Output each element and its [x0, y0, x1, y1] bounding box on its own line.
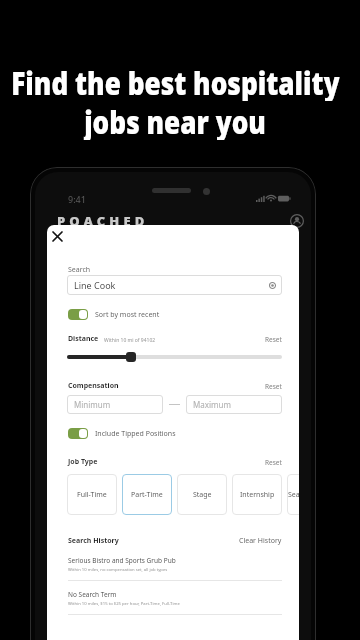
button[interactable]: Minimum	[74, 395, 156, 414]
staticText: Full-Time	[77, 490, 107, 500]
staticText: jobs near you	[84, 101, 266, 140]
button[interactable]: Include Tipped Positions	[68, 427, 176, 440]
button[interactable]: Line Cook	[74, 275, 276, 295]
button[interactable]: Close	[51, 230, 64, 243]
button[interactable]: Stage	[177, 474, 227, 515]
button[interactable]: Reset	[265, 458, 282, 467]
button[interactable]: Profile	[290, 214, 304, 228]
staticText: Include Tipped Positions	[95, 429, 176, 439]
button[interactable]: Full-Time	[67, 474, 117, 515]
staticText: POACHED	[57, 212, 149, 230]
staticText: 9:41	[68, 193, 86, 205]
button[interactable]: No Search Term	[68, 590, 282, 615]
staticText: Within 10 miles, $15 to $25 per hour, Pa…	[68, 601, 180, 607]
button[interactable]: Reset	[265, 335, 282, 344]
staticText: Find the best hospitality	[11, 62, 340, 101]
staticText: Minimum	[74, 399, 111, 410]
staticText: Part-Time	[131, 490, 163, 500]
button[interactable]: Reset	[265, 382, 282, 391]
button[interactable]: Serious Bistro and Sports Grub Pub	[68, 556, 282, 581]
button[interactable]: Clear History	[239, 536, 282, 546]
staticText: Search History	[68, 536, 119, 546]
staticText: Stage	[193, 490, 212, 500]
staticText: Within 10 miles, no compensation set, al…	[68, 567, 168, 573]
staticText: Distance	[68, 334, 99, 344]
button[interactable]: Part-Time	[122, 474, 172, 515]
button[interactable]: Internship	[232, 474, 282, 515]
staticText: Serious Bistro and Sports Grub Pub	[68, 556, 176, 565]
staticText: Internship	[240, 490, 275, 500]
button[interactable]: Seasonal	[287, 474, 299, 515]
staticText: Line Cook	[74, 279, 116, 291]
button[interactable]: Maximum	[193, 395, 275, 414]
staticText: Within 10 mi of 94102	[104, 337, 156, 344]
staticText: No Search Term	[68, 590, 117, 599]
staticText: Maximum	[193, 399, 231, 410]
staticText: Compensation	[68, 381, 119, 391]
staticText: Seasonal	[288, 490, 299, 500]
button[interactable]: Sort by most recent	[68, 308, 160, 321]
staticText: Job Type	[68, 457, 98, 467]
staticText: Search	[68, 265, 91, 275]
staticText: Sort by most recent	[95, 310, 160, 320]
